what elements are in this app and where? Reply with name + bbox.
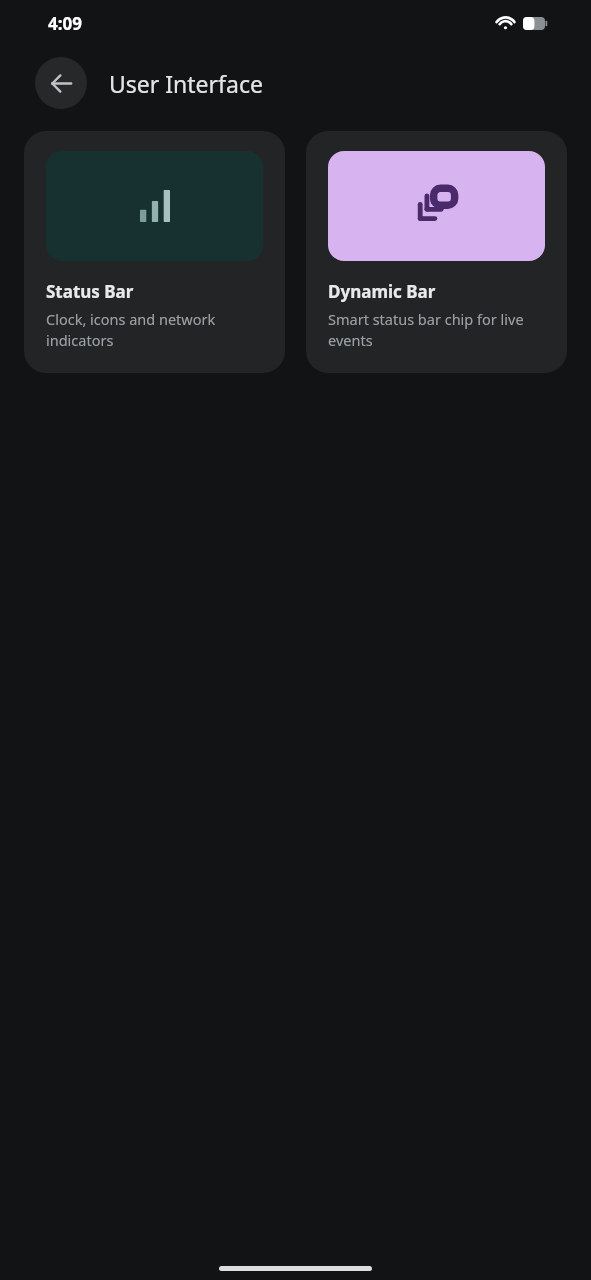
staticText: Dynamic Bar bbox=[328, 280, 436, 303]
button[interactable]: Dynamic Bar bbox=[306, 131, 567, 373]
button[interactable]: Status Bar bbox=[24, 131, 285, 373]
staticText: Smart status bar chip for live events bbox=[328, 309, 545, 351]
staticText: 4:09 bbox=[48, 12, 82, 35]
button[interactable]: Back bbox=[35, 57, 87, 109]
staticText: User Interface bbox=[109, 68, 263, 99]
staticText: Status Bar bbox=[46, 280, 134, 303]
staticText: Clock, icons and network indicators bbox=[46, 309, 263, 351]
